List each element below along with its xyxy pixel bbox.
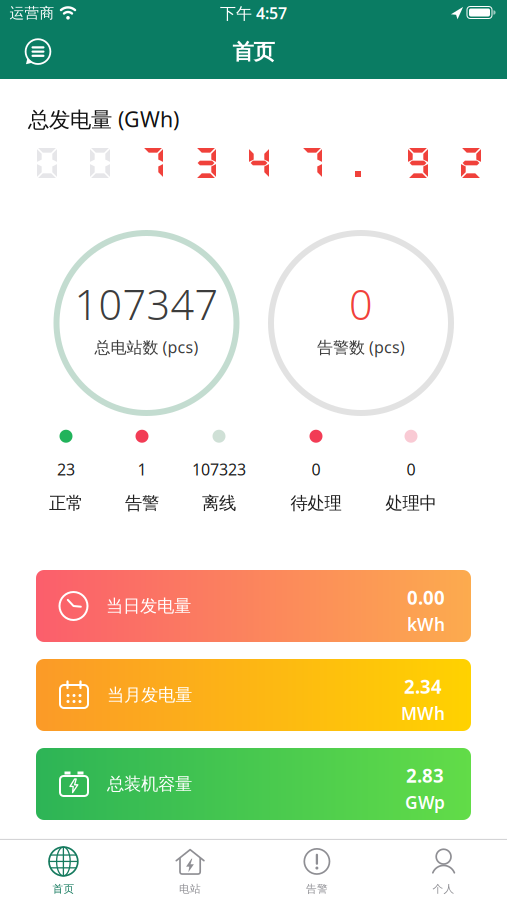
staticText: 总电站数 (pcs) xyxy=(94,336,198,358)
staticText: 运营商 xyxy=(9,4,54,22)
staticText: 23 xyxy=(57,459,75,480)
staticText: 下午 4:57 xyxy=(220,2,287,24)
staticText: 处理中 xyxy=(385,492,436,514)
staticText: 0 xyxy=(349,277,373,331)
staticText: 告警 xyxy=(125,492,159,514)
staticText: 0 xyxy=(311,459,320,480)
staticText: MWh xyxy=(401,702,445,725)
staticText: 正常 xyxy=(49,492,83,514)
staticText: 个人 xyxy=(433,882,455,895)
staticText: kWh xyxy=(407,613,445,636)
staticText: 2.83 xyxy=(406,763,444,788)
button[interactable]: 总装机容量 xyxy=(36,748,471,820)
staticText: 107323 xyxy=(192,459,246,480)
staticText: 电站 xyxy=(179,882,201,895)
staticText: 0.00 xyxy=(407,585,445,610)
staticText: 107347 xyxy=(74,277,218,331)
button[interactable]: 个人 xyxy=(381,842,507,900)
button[interactable]: 电站 xyxy=(127,842,253,900)
button[interactable]: 当月发电量 xyxy=(36,659,471,731)
staticText: 待处理 xyxy=(290,492,341,514)
staticText: 当日发电量 xyxy=(106,595,191,617)
staticText: 首页 xyxy=(232,39,274,65)
staticText: 首页 xyxy=(52,882,74,895)
button[interactable]: 消息 xyxy=(24,38,52,66)
button[interactable]: 首页 xyxy=(0,842,126,900)
button[interactable]: 告警 xyxy=(254,842,380,900)
staticText: 当月发电量 xyxy=(107,684,192,706)
staticText: GWp xyxy=(405,791,445,814)
staticText: 告警 xyxy=(306,882,328,895)
button[interactable]: 当日发电量 xyxy=(36,570,471,642)
staticText: 总发电量 (GWh) xyxy=(28,105,179,133)
staticText: 1 xyxy=(137,459,146,480)
staticText: 总装机容量 xyxy=(107,773,192,795)
staticText: 离线 xyxy=(202,492,236,514)
staticText: 0 xyxy=(406,459,415,480)
staticText: 2.34 xyxy=(404,674,442,699)
staticText: 告警数 (pcs) xyxy=(317,336,405,358)
